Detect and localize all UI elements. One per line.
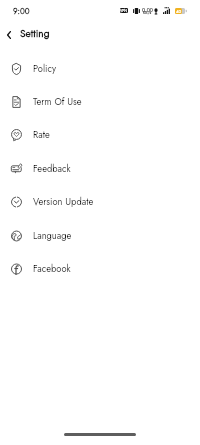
staticText: Rate [33,128,50,141]
staticText: 0.00 [142,6,153,14]
button[interactable]: Version Update [0,185,200,218]
button[interactable]: Language [0,219,200,252]
staticText: KB/s [143,10,152,16]
button[interactable]: Facebook [0,252,200,285]
button[interactable]: Policy [0,52,200,85]
staticText: Term Of Use [33,95,82,108]
staticText: Policy [33,62,56,75]
staticText: Facebook [33,262,71,275]
staticText: 9:00 [13,5,30,17]
staticText: Language [33,229,72,242]
staticText: Feedback [33,162,71,175]
staticText: Version Update [33,195,94,208]
button[interactable]: Back [1,27,17,43]
button[interactable]: Term Of Use [0,85,200,118]
button[interactable]: Feedback [0,152,200,185]
staticText: 40 [176,8,182,14]
staticText: Setting [20,26,50,41]
staticText: VPN [120,8,128,13]
button[interactable]: Rate [0,118,200,151]
